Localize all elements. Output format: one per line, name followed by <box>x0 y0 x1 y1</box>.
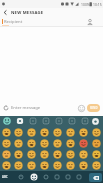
button[interactable] <box>90 149 103 160</box>
button[interactable] <box>51 160 64 171</box>
staticText: 10:15 <box>93 2 102 7</box>
button[interactable]: ABC <box>0 172 10 182</box>
button[interactable] <box>77 138 90 149</box>
button[interactable] <box>77 149 90 160</box>
button[interactable] <box>15 171 27 183</box>
button[interactable] <box>64 126 77 138</box>
button[interactable] <box>64 160 77 171</box>
staticText: ABC <box>2 175 8 179</box>
staticText: 100% <box>81 2 90 7</box>
button[interactable]: Recipient <box>0 17 103 26</box>
button[interactable] <box>0 138 12 149</box>
button[interactable] <box>12 160 25 171</box>
staticText: SEND <box>90 106 98 110</box>
button[interactable] <box>51 149 64 160</box>
button[interactable] <box>39 171 51 183</box>
button[interactable] <box>51 126 64 138</box>
button[interactable] <box>90 138 103 149</box>
button[interactable] <box>12 149 25 160</box>
button[interactable] <box>51 171 63 183</box>
button[interactable] <box>38 160 51 171</box>
button[interactable] <box>38 138 51 149</box>
button[interactable] <box>25 149 38 160</box>
button[interactable] <box>38 116 51 126</box>
staticText: NEW MESSAGE <box>11 10 44 16</box>
button[interactable] <box>27 171 39 183</box>
button[interactable] <box>2 9 9 16</box>
button[interactable] <box>38 149 51 160</box>
button[interactable] <box>90 116 103 126</box>
button[interactable] <box>51 116 64 126</box>
button[interactable] <box>0 116 12 126</box>
button[interactable] <box>51 138 64 149</box>
button[interactable] <box>77 126 90 138</box>
button[interactable] <box>64 149 77 160</box>
button[interactable] <box>25 116 38 126</box>
button[interactable] <box>38 126 51 138</box>
button[interactable] <box>25 138 38 149</box>
staticText: Enter message <box>11 105 41 111</box>
button[interactable] <box>0 149 12 160</box>
button[interactable] <box>0 126 12 138</box>
button[interactable] <box>63 171 75 183</box>
button[interactable] <box>12 138 25 149</box>
button[interactable] <box>12 126 25 138</box>
button[interactable] <box>64 138 77 149</box>
button[interactable] <box>90 126 103 138</box>
button[interactable] <box>90 160 103 171</box>
button[interactable] <box>75 171 87 183</box>
button[interactable] <box>89 173 102 182</box>
button[interactable] <box>64 116 77 126</box>
button[interactable] <box>12 116 25 126</box>
button[interactable] <box>77 160 90 171</box>
staticText: Recipient <box>4 19 23 25</box>
button[interactable]: SEND <box>87 104 100 112</box>
button[interactable] <box>0 160 12 171</box>
button[interactable] <box>25 160 38 171</box>
button[interactable] <box>77 116 90 126</box>
button[interactable] <box>25 126 38 138</box>
